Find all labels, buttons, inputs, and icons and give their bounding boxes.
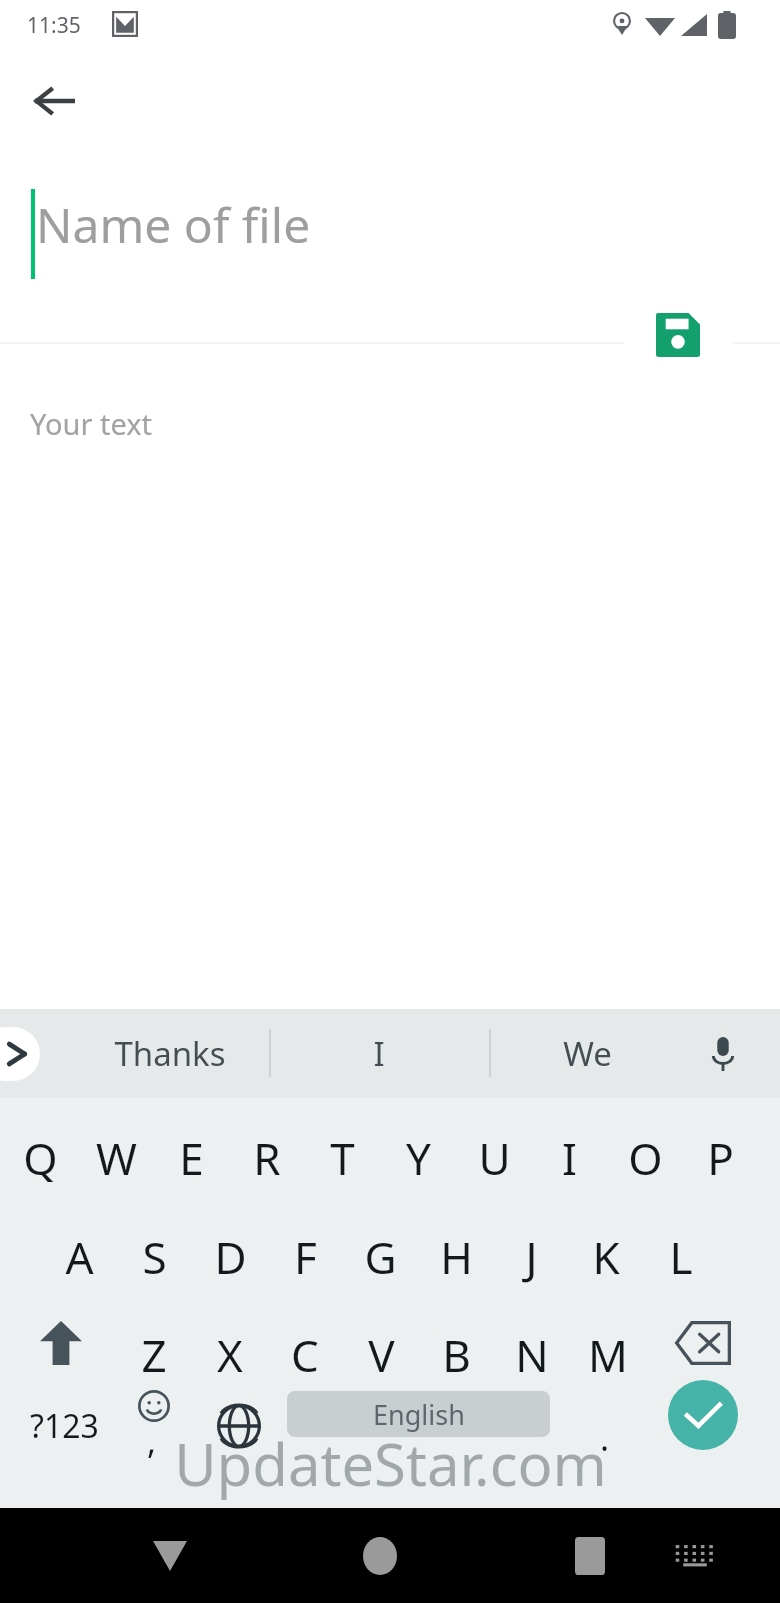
staticText: We	[563, 1031, 612, 1076]
staticText: V	[368, 1325, 395, 1385]
button[interactable]: Name of file	[0, 178, 780, 288]
staticText: UpdateStar.com	[174, 1424, 607, 1503]
staticText: Your text	[30, 404, 153, 443]
button[interactable]: ?123	[10, 1378, 118, 1474]
button[interactable]: I	[532, 1098, 608, 1196]
button[interactable]: Z	[117, 1294, 193, 1392]
button[interactable]: B	[419, 1294, 495, 1392]
staticText: C	[291, 1325, 319, 1385]
button[interactable]: Backspace	[659, 1294, 747, 1392]
staticText: F	[294, 1227, 317, 1287]
button[interactable]: F	[268, 1196, 344, 1294]
staticText: Z	[141, 1325, 167, 1385]
staticText: I	[562, 1128, 577, 1188]
staticText: G	[364, 1227, 397, 1287]
button[interactable]: A	[42, 1196, 118, 1294]
button[interactable]: Expand suggestions	[0, 1027, 40, 1081]
staticText: N	[515, 1325, 549, 1385]
button[interactable]: Shift	[20, 1294, 102, 1392]
button[interactable]: We	[502, 1019, 672, 1087]
button[interactable]: Switch keyboard	[655, 1518, 735, 1594]
staticText: A	[65, 1227, 94, 1287]
staticText: R	[253, 1128, 281, 1188]
staticText: X	[217, 1325, 243, 1385]
staticText: J	[525, 1227, 538, 1287]
button[interactable]: Change language	[198, 1378, 280, 1474]
button[interactable]: P	[683, 1098, 759, 1196]
button[interactable]: Hide keyboard	[128, 1516, 212, 1596]
staticText: T	[330, 1128, 355, 1188]
button[interactable]: H	[419, 1196, 495, 1294]
staticText: E	[179, 1128, 204, 1188]
staticText: L	[669, 1227, 693, 1287]
button[interactable]: Your text	[0, 360, 780, 980]
button[interactable]: Recents	[548, 1516, 632, 1596]
button[interactable]: S	[117, 1196, 193, 1294]
button[interactable]: M	[571, 1294, 647, 1392]
button[interactable]: V	[344, 1294, 420, 1392]
staticText: Y	[406, 1128, 431, 1188]
staticText: D	[214, 1227, 247, 1287]
staticText: .	[600, 1415, 610, 1461]
button[interactable]: O	[608, 1098, 684, 1196]
staticText: B	[442, 1325, 471, 1385]
staticText: ?123	[30, 1404, 99, 1448]
staticText: ,	[147, 1418, 157, 1464]
button[interactable]: N	[495, 1294, 571, 1392]
button[interactable]: R	[230, 1098, 306, 1196]
staticText: U	[478, 1128, 511, 1188]
button[interactable]: D	[193, 1196, 269, 1294]
button[interactable]: U	[457, 1098, 533, 1196]
button[interactable]: Back	[19, 65, 91, 137]
button[interactable]: E	[154, 1098, 230, 1196]
staticText: 11:35	[27, 11, 81, 40]
staticText: English	[373, 1396, 465, 1433]
staticText: P	[707, 1128, 734, 1188]
button[interactable]: G	[343, 1196, 419, 1294]
staticText: Thanks	[114, 1031, 226, 1076]
button[interactable]: Save	[623, 280, 733, 390]
staticText: O	[628, 1128, 663, 1188]
button[interactable]: Thanks	[85, 1019, 255, 1087]
button[interactable]: K	[569, 1196, 645, 1294]
button[interactable]: J	[494, 1196, 570, 1294]
staticText: Name of file	[36, 192, 311, 257]
button[interactable]: X	[193, 1294, 269, 1392]
button[interactable]: C	[268, 1294, 344, 1392]
button[interactable]: T	[305, 1098, 381, 1196]
button[interactable]: English	[287, 1391, 550, 1437]
staticText: K	[592, 1227, 620, 1287]
staticText: I	[373, 1031, 385, 1076]
button[interactable]: Enter	[668, 1380, 738, 1450]
button[interactable]: Y	[381, 1098, 457, 1196]
button[interactable]: Home	[338, 1516, 422, 1596]
button[interactable]: L	[644, 1196, 720, 1294]
staticText: S	[142, 1227, 167, 1287]
staticText: M	[588, 1325, 628, 1385]
button[interactable]: I	[294, 1019, 464, 1087]
button[interactable]: .	[565, 1378, 645, 1474]
button[interactable]: Q	[3, 1098, 79, 1196]
button[interactable]: Emoji	[118, 1378, 198, 1474]
button[interactable]: Voice input	[694, 1026, 752, 1082]
button[interactable]: W	[79, 1098, 155, 1196]
staticText: W	[96, 1128, 137, 1188]
staticText: Q	[23, 1128, 58, 1188]
staticText: H	[440, 1227, 473, 1287]
